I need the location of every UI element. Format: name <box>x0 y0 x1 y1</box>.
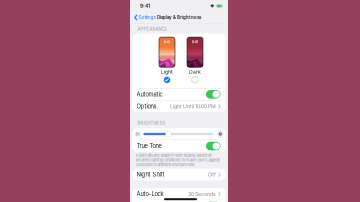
button[interactable]: 9:41 <box>187 37 203 83</box>
staticText: Light Until 10:00 PM <box>170 103 216 109</box>
button[interactable]: Raise to Wake <box>132 200 225 202</box>
button[interactable]: Night Shift <box>132 169 225 180</box>
button[interactable]: Automatic <box>132 89 225 100</box>
staticText: Dark <box>189 69 201 75</box>
button[interactable]: Options <box>132 101 225 112</box>
staticText: Display & Brightness <box>157 15 201 20</box>
button[interactable]: Auto-Lock <box>132 188 225 200</box>
staticText: 9:41 <box>191 40 198 44</box>
staticText: Settings <box>138 15 155 20</box>
button[interactable]: 9:41 <box>159 37 175 83</box>
button[interactable]: True Tone <box>132 140 225 152</box>
staticText: 30 Seconds <box>188 191 216 197</box>
staticText: Light <box>161 69 173 75</box>
staticText: 9:41 <box>163 40 170 44</box>
button[interactable]: Settings <box>130 13 155 22</box>
staticText: 9:41 <box>140 3 150 9</box>
staticText: Night Shift <box>136 171 164 178</box>
staticText: Automatic <box>136 91 162 98</box>
staticText: True Tone <box>136 142 161 149</box>
staticText: Off <box>208 171 216 178</box>
staticText: APPEARANCE <box>137 26 167 32</box>
staticText: Automatically adapt iPhone display based… <box>135 153 220 167</box>
staticText: BRIGHTNESS <box>137 121 165 126</box>
staticText: Auto-Lock <box>136 191 163 197</box>
staticText: Options <box>136 103 156 110</box>
